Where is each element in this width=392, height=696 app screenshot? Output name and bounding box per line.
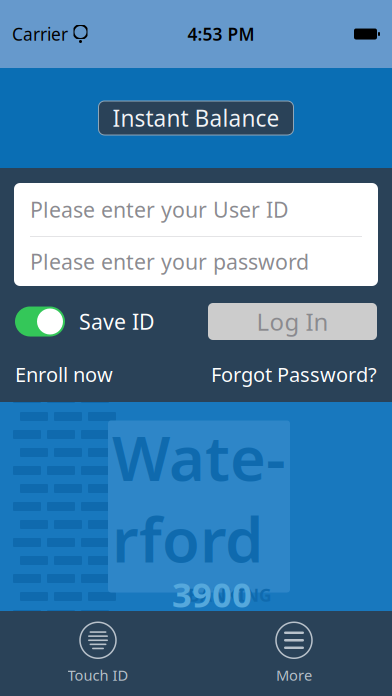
button[interactable]: Enroll now	[15, 361, 113, 388]
staticText: Instant Balance	[112, 103, 279, 133]
button[interactable]: Log In	[208, 303, 377, 340]
staticText: Log In	[256, 306, 328, 337]
staticText: Waterford	[112, 416, 286, 579]
button[interactable]: More	[245, 622, 343, 684]
staticText: Touch ID	[67, 665, 128, 685]
button[interactable]: Save ID	[15, 306, 155, 336]
staticText: Please enter your password	[30, 247, 309, 276]
button[interactable]: Touch ID	[49, 622, 147, 684]
staticText: 3900	[172, 571, 252, 617]
button[interactable]: Forgot Password?	[211, 361, 377, 388]
staticText: Carrier	[12, 22, 68, 45]
staticText: More	[276, 665, 312, 685]
staticText: 4:53 PM	[187, 22, 254, 45]
staticText: Enroll now	[15, 361, 113, 388]
staticText: Forgot Password?	[211, 361, 377, 388]
staticText: Please enter your User ID	[30, 195, 289, 224]
staticText: Save ID	[79, 307, 155, 336]
staticText: BANKING	[188, 583, 272, 606]
button[interactable]: Instant Balance	[98, 101, 293, 135]
